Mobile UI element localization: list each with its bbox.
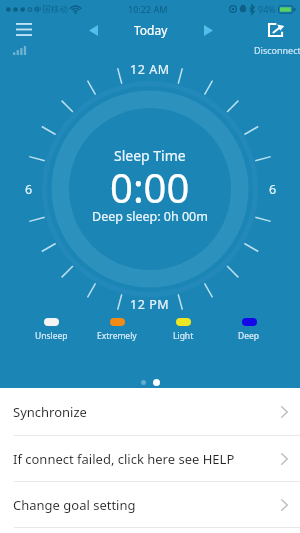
button[interactable]: Menu — [7, 18, 40, 41]
button[interactable]: Extremely — [84, 318, 150, 342]
button[interactable]: If connect failed, click here see HELP — [0, 436, 300, 481]
staticText: Extremely — [97, 330, 137, 342]
staticText: 94% — [258, 3, 276, 15]
button[interactable]: Previous day — [81, 21, 105, 39]
staticText: 6 — [269, 181, 277, 198]
button[interactable]: Synchronize — [0, 388, 300, 435]
staticText: 中国移动 — [34, 4, 68, 15]
button[interactable]: Unsleep — [18, 318, 84, 342]
staticText: Unsleep — [35, 330, 68, 342]
staticText: Change goal setting — [13, 496, 136, 514]
staticText: Synchronize — [13, 403, 87, 421]
button[interactable]: Light — [150, 318, 216, 342]
button[interactable]: Disconnect — [250, 18, 300, 56]
staticText: Deep — [238, 330, 260, 342]
button[interactable]: Next day — [196, 21, 220, 39]
staticText: Light — [173, 330, 194, 342]
staticText: 6 — [25, 181, 33, 198]
staticText: Sleep Time — [114, 146, 186, 165]
staticText: Today — [134, 22, 168, 38]
staticText: 12 AM — [130, 61, 170, 78]
staticText: Disconnect — [254, 44, 300, 56]
staticText: 0:00 — [110, 160, 190, 210]
staticText: 10:22 AM — [128, 3, 168, 15]
staticText: Deep sleep: 0h 00m — [92, 208, 208, 225]
staticText: 12 PM — [130, 296, 170, 313]
staticText: If connect failed, click here see HELP — [13, 450, 235, 468]
button[interactable]: Change goal setting — [0, 482, 300, 527]
button[interactable]: Deep — [216, 318, 282, 342]
